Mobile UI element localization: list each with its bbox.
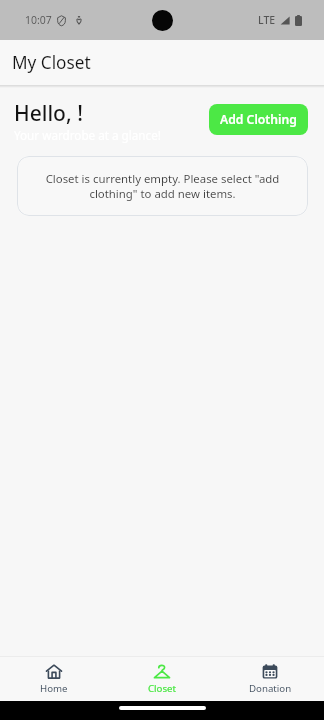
staticText: Hello, ! [14,99,83,128]
button[interactable]: Donation [216,657,324,701]
button[interactable]: Add Clothing [209,104,308,135]
staticText: Closet is currently empty. Please select… [43,171,282,201]
button[interactable]: Closet [108,657,216,701]
staticText: Home [40,682,68,695]
button[interactable]: Home [0,657,108,701]
staticText: My Closet [12,51,91,74]
staticText: Add Clothing [220,111,297,128]
staticText: Closet [148,682,177,695]
staticText: LTE [258,13,276,27]
staticText: Donation [249,682,292,695]
staticText: 10:07 [25,13,52,27]
